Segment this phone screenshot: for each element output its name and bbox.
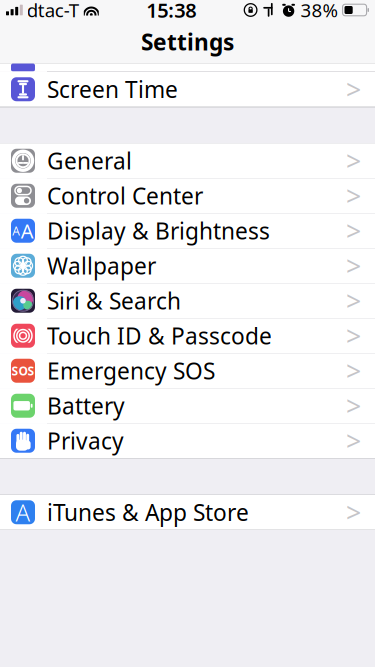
- staticText: >: [346, 178, 361, 213]
- staticText: 38%: [301, 0, 339, 22]
- staticText: Display & Brightness: [47, 216, 270, 246]
- button[interactable]: A: [0, 495, 375, 530]
- button[interactable]: A: [0, 213, 375, 248]
- staticText: >: [346, 494, 361, 530]
- button[interactable]: Privacy: [0, 423, 375, 458]
- staticText: >: [346, 318, 361, 353]
- button[interactable]: Siri & Search: [0, 283, 375, 318]
- button[interactable]: General: [0, 143, 375, 178]
- staticText: Emergency SOS: [47, 356, 215, 386]
- staticText: >: [346, 248, 361, 283]
- staticText: Privacy: [47, 426, 124, 456]
- staticText: >: [346, 353, 361, 388]
- staticText: Screen Time: [47, 74, 178, 104]
- staticText: >: [346, 71, 361, 107]
- staticText: General: [47, 146, 132, 176]
- button[interactable]: Screen Time: [0, 72, 375, 107]
- staticText: A: [12, 223, 20, 239]
- staticText: SOS: [11, 363, 34, 379]
- staticText: >: [346, 388, 361, 423]
- staticText: Battery: [47, 391, 125, 421]
- staticText: iTunes & App Store: [47, 497, 249, 527]
- staticText: >: [346, 283, 361, 318]
- staticText: Wallpaper: [47, 251, 156, 281]
- button[interactable]: SOS: [0, 353, 375, 388]
- staticText: Settings: [141, 27, 234, 57]
- staticText: A: [15, 496, 30, 528]
- button[interactable]: Control Center: [0, 178, 375, 213]
- staticText: >: [346, 143, 361, 178]
- staticText: dtac-T: [27, 0, 79, 22]
- staticText: >: [346, 213, 361, 248]
- button[interactable]: Touch ID & Passcode: [0, 318, 375, 353]
- staticText: Control Center: [47, 181, 203, 211]
- button[interactable]: Battery: [0, 388, 375, 423]
- staticText: A: [21, 217, 34, 244]
- button[interactable]: Wallpaper: [0, 248, 375, 283]
- staticText: Touch ID & Passcode: [47, 321, 272, 351]
- staticText: Siri & Search: [47, 286, 181, 316]
- staticText: 15:38: [146, 0, 196, 23]
- staticText: >: [346, 423, 361, 458]
